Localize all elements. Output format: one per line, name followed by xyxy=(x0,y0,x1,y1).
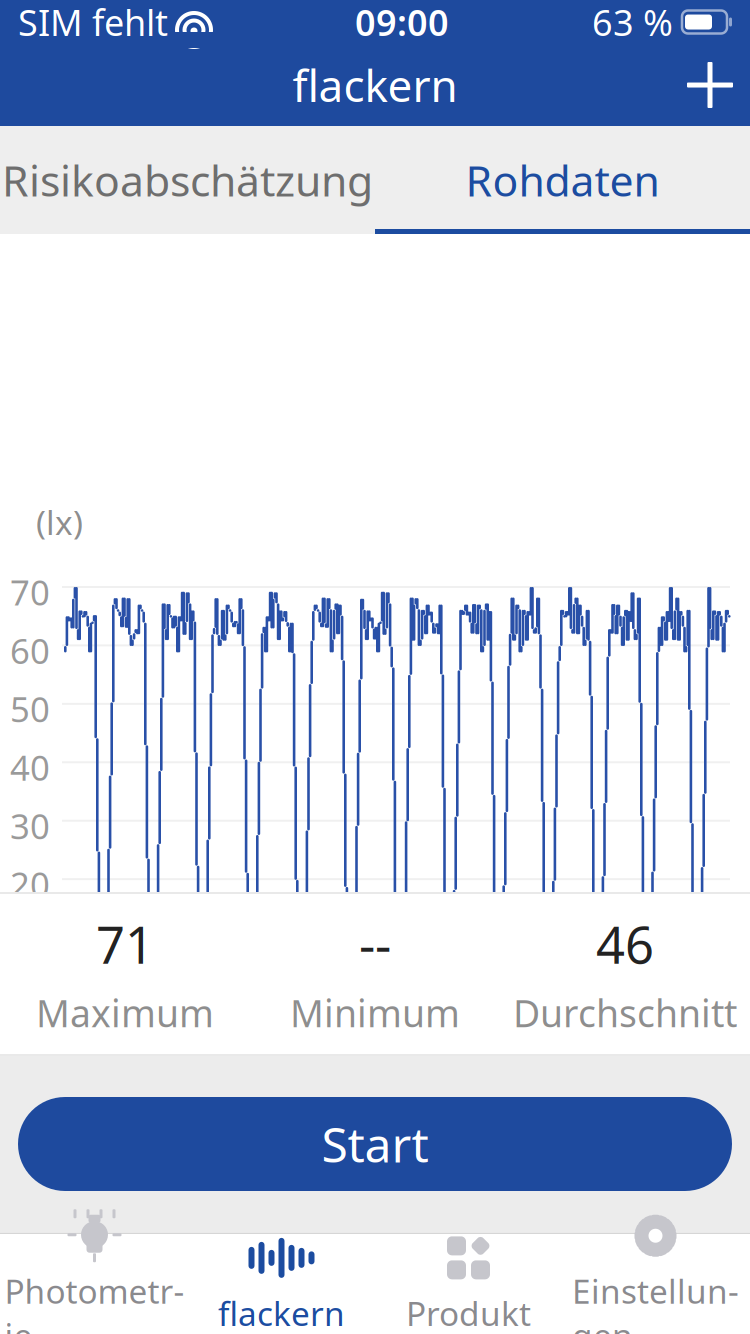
staticText: 71 xyxy=(96,911,154,978)
staticText: 20 xyxy=(10,861,50,907)
button[interactable]: Photometrie xyxy=(1,1234,188,1334)
staticText: Produkt xyxy=(406,1291,531,1334)
staticText: 0 xyxy=(30,978,50,1024)
staticText: 时间/ms xyxy=(655,1032,750,1076)
staticText: Einstellungen xyxy=(572,1269,739,1334)
staticText: 63 % xyxy=(592,0,673,46)
staticText: flackern xyxy=(218,1291,345,1334)
button[interactable]: Rohdaten xyxy=(375,126,750,234)
staticText: 16 xyxy=(455,1006,495,1052)
button[interactable]: Hinzufügen xyxy=(670,45,750,125)
staticText: 46 xyxy=(596,911,654,978)
staticText: Maximum xyxy=(36,988,214,1037)
staticText: Risikoabschätzung xyxy=(2,152,373,208)
staticText: 24 xyxy=(661,1006,701,1052)
staticText: 09:00 xyxy=(355,0,449,46)
button[interactable]: Risikoabschätzung xyxy=(0,126,375,234)
staticText: 70 xyxy=(10,569,50,615)
button[interactable]: Produkt xyxy=(375,1234,562,1334)
staticText: 0 xyxy=(52,1006,72,1052)
staticText: Rohdaten xyxy=(465,152,659,208)
staticText: 60 xyxy=(10,627,50,673)
button[interactable]: Einstellungen xyxy=(562,1234,749,1334)
staticText: 40 xyxy=(10,744,50,790)
staticText: Photometrie xyxy=(4,1269,184,1334)
button[interactable]: Start xyxy=(18,1097,732,1191)
staticText: 12 xyxy=(352,1006,392,1052)
staticText: flackern xyxy=(292,56,457,114)
staticText: 20 xyxy=(558,1006,598,1052)
staticText: Durchschnitt xyxy=(513,988,737,1037)
staticText: -- xyxy=(359,911,391,978)
staticText: 4 xyxy=(155,1006,175,1052)
button[interactable]: flackern xyxy=(188,1234,375,1334)
staticText: Start xyxy=(321,1112,428,1176)
staticText: 50 xyxy=(10,686,50,732)
staticText: (lx) xyxy=(36,500,83,544)
staticText: Minimum xyxy=(290,988,460,1037)
staticText: SIM fehlt xyxy=(18,0,168,46)
staticText: 30 xyxy=(10,803,50,849)
